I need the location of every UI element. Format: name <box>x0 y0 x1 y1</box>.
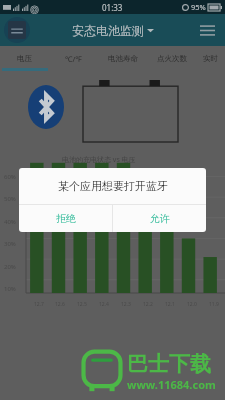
staticText: 电压 <box>17 54 32 63</box>
staticText: 12.0 <box>187 301 197 308</box>
staticText: 20% <box>4 263 16 271</box>
staticText: 10% <box>4 285 16 293</box>
staticText: 12.3 <box>121 301 131 308</box>
staticText: 50% <box>4 195 16 203</box>
staticText: 11.9 <box>209 301 219 308</box>
staticText: 12.7 <box>34 301 44 308</box>
staticText: 12.2 <box>143 301 153 308</box>
staticText: 实时 <box>203 54 218 63</box>
staticText: 01:33 <box>102 2 123 13</box>
button[interactable]: ℃/℉ <box>49 46 98 71</box>
button[interactable]: 点火次数 <box>147 46 196 71</box>
button[interactable]: 实时 <box>196 46 225 71</box>
staticText: 30% <box>4 240 16 248</box>
staticText: 电池的充电状态 vs 电压 <box>62 155 136 165</box>
staticText: 点火次数 <box>157 54 187 63</box>
staticText: 巴士下载 <box>127 351 211 377</box>
staticText: 允许 <box>150 212 170 225</box>
staticText: 12.1 <box>165 301 175 308</box>
staticText: 40% <box>4 218 16 226</box>
staticText: 60% <box>4 173 16 181</box>
staticText: www.11684.com <box>127 377 216 392</box>
staticText: 某个应用想要打开蓝牙 <box>58 179 168 193</box>
button[interactable]: 电池寿命 <box>98 46 147 71</box>
staticText: 12.5 <box>77 301 87 308</box>
button[interactable]: 允许 <box>113 205 206 232</box>
button[interactable]: Menu <box>195 18 219 42</box>
staticText: ℃/℉ <box>65 54 82 64</box>
staticText: 安态电池监测 <box>72 23 144 38</box>
button[interactable]: App logo <box>4 17 30 43</box>
button[interactable]: 安态电池监测 <box>72 23 154 38</box>
staticText: 95% <box>191 2 206 12</box>
staticText: 电池寿命 <box>108 54 138 63</box>
button[interactable]: 电压 <box>0 46 49 71</box>
button[interactable]: 拒绝 <box>19 205 112 232</box>
staticText: 12.4 <box>99 301 109 308</box>
staticText: 12.6 <box>55 301 65 308</box>
staticText: 拒绝 <box>56 212 76 225</box>
button[interactable]: Bluetooth <box>28 85 64 129</box>
